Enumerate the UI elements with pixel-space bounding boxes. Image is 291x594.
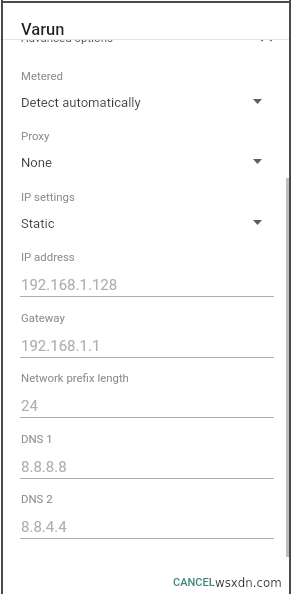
staticText: 192.168.1.1 bbox=[21, 337, 101, 355]
button[interactable]: IP settings: Static bbox=[0, 179, 291, 240]
staticText: Advanced options bbox=[21, 31, 113, 44]
button[interactable]: Network prefix length: 24 bbox=[0, 360, 291, 421]
button[interactable]: Metered: Detect automatically bbox=[0, 58, 291, 119]
staticText: 24 bbox=[21, 397, 38, 415]
button[interactable]: IP address: 192.168.1.128 bbox=[0, 239, 291, 300]
staticText: Varun bbox=[21, 20, 65, 39]
staticText: IP settings bbox=[21, 190, 75, 203]
button[interactable]: CANCEL bbox=[173, 576, 215, 589]
staticText: None bbox=[21, 155, 52, 170]
button[interactable]: Gateway: 192.168.1.1 bbox=[0, 300, 291, 361]
staticText: DNS 2 bbox=[21, 492, 53, 505]
other: Collapse advanced options bbox=[261, 34, 272, 41]
staticText: Gateway bbox=[21, 311, 65, 324]
staticText: Detect automatically bbox=[21, 95, 141, 110]
button[interactable]: DNS 2: 8.8.4.4 bbox=[0, 481, 291, 542]
button[interactable]: Proxy: None bbox=[0, 118, 291, 179]
staticText: 192.168.1.128 bbox=[21, 276, 118, 294]
staticText: IP address bbox=[21, 250, 75, 263]
staticText: Proxy bbox=[21, 129, 50, 142]
staticText: 8.8.4.4 bbox=[21, 518, 67, 536]
staticText: Network prefix length bbox=[21, 371, 129, 384]
staticText: CANCEL bbox=[173, 576, 215, 589]
staticText: Static bbox=[21, 216, 55, 231]
button[interactable]: Advanced options bbox=[0, 31, 291, 45]
staticText: DNS 1 bbox=[21, 432, 53, 445]
button[interactable]: DNS 1: 8.8.8.8 bbox=[0, 421, 291, 482]
staticText: wsxdn.com bbox=[215, 576, 282, 590]
staticText: Metered bbox=[21, 69, 63, 82]
staticText: 8.8.8.8 bbox=[21, 458, 67, 476]
